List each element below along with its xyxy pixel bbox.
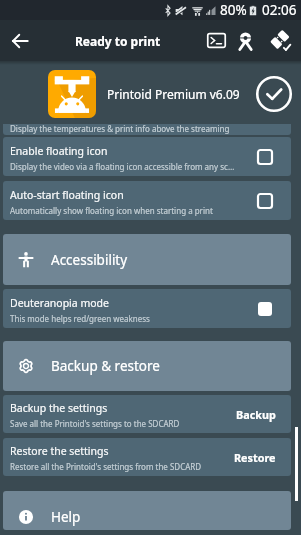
button[interactable]: Connection bbox=[265, 20, 295, 61]
button[interactable]: Terminal bbox=[202, 20, 231, 61]
staticText: Printoid Premium v6.09 bbox=[107, 86, 240, 102]
button[interactable]: Accessibility bbox=[3, 234, 291, 285]
button[interactable]: Enable floating icon bbox=[3, 137, 291, 176]
staticText: Deuteranopia mode bbox=[10, 296, 109, 310]
button[interactable]: Enable floating icon bbox=[251, 143, 279, 171]
staticText: Restore bbox=[234, 450, 276, 465]
staticText: Restore the settings bbox=[10, 444, 109, 458]
button[interactable]: Printoid Premium v6.09 bbox=[0, 61, 301, 124]
button[interactable]: Backup bbox=[230, 398, 282, 431]
staticText: Ready to print bbox=[75, 33, 161, 49]
button[interactable]: Connected bbox=[253, 73, 294, 114]
staticText: Display the temperatures & print info ab… bbox=[10, 124, 230, 134]
button[interactable]: OctoPrint bbox=[231, 20, 260, 61]
button[interactable]: Auto-start floating icon bbox=[251, 187, 279, 215]
button[interactable]: Auto-start floating icon bbox=[3, 181, 291, 220]
staticText: Automatically show floating icon when st… bbox=[10, 205, 235, 216]
button[interactable]: Backup & restore bbox=[3, 341, 291, 391]
button[interactable]: Backup the settings bbox=[3, 395, 291, 433]
staticText: Restore all the Printoid's settings from… bbox=[10, 461, 225, 472]
button[interactable]: Restore the settings bbox=[3, 438, 291, 476]
staticText: Enable floating icon bbox=[10, 144, 108, 158]
button[interactable]: Deuteranopia mode bbox=[251, 295, 279, 323]
button[interactable]: Back bbox=[6, 20, 33, 61]
button[interactable]: Help bbox=[3, 491, 291, 530]
staticText: 02:06 bbox=[262, 1, 297, 19]
staticText: Backup & restore bbox=[51, 357, 160, 375]
staticText: Accessibility bbox=[51, 251, 128, 269]
button[interactable]: Restore bbox=[228, 441, 282, 474]
staticText: This mode helps red/green weakness bbox=[10, 313, 235, 324]
button[interactable]: Deuteranopia mode bbox=[3, 289, 291, 328]
staticText: Backup bbox=[236, 407, 276, 422]
staticText: Auto-start floating icon bbox=[10, 188, 124, 202]
staticText: Backup the settings bbox=[10, 401, 108, 415]
staticText: Save all the Printoid's settings to the … bbox=[10, 418, 225, 429]
button[interactable]: Display the temperatures & print info ab… bbox=[3, 124, 291, 135]
staticText: 80% bbox=[220, 1, 247, 19]
staticText: Help bbox=[51, 508, 81, 526]
staticText: Display the video via a floating icon ac… bbox=[10, 161, 235, 172]
